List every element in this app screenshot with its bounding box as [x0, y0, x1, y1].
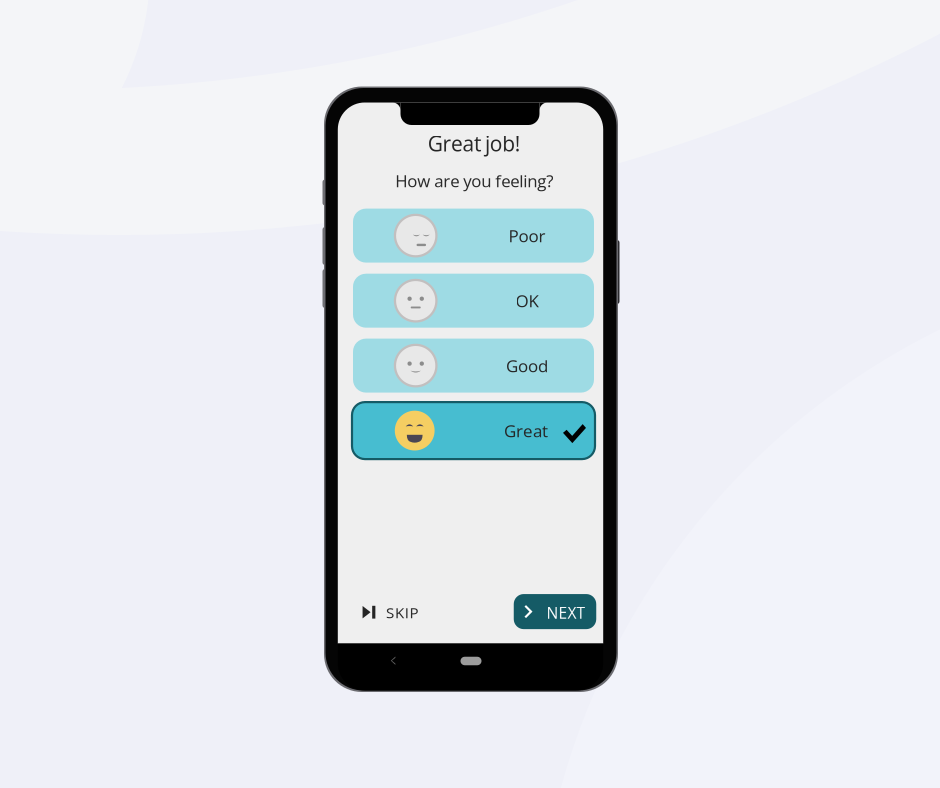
- button[interactable]: Good: [353, 339, 594, 393]
- button[interactable]: Poor: [353, 209, 594, 263]
- staticText: Great: [504, 419, 548, 442]
- staticText: Good: [506, 354, 548, 377]
- staticText: How are you feeling?: [395, 169, 553, 192]
- staticText: NEXT: [546, 602, 585, 623]
- staticText: SKIP: [386, 602, 419, 622]
- button[interactable]: OK: [353, 274, 594, 328]
- button[interactable]: SKIP: [359, 595, 423, 629]
- staticText: Poor: [508, 224, 545, 247]
- staticText: OK: [515, 289, 538, 312]
- staticText: Great job!: [428, 129, 521, 158]
- button[interactable]: Great: [352, 402, 595, 459]
- button[interactable]: NEXT: [514, 594, 596, 629]
